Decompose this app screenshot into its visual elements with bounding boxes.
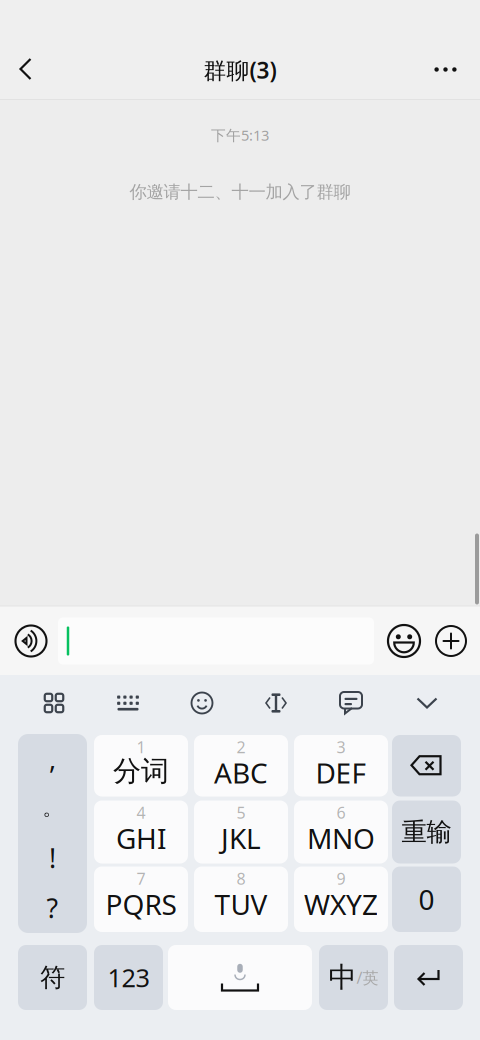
button[interactable]: 符 — [18, 945, 87, 1010]
button[interactable]: Move cursor — [249, 681, 303, 725]
button[interactable]: 7 — [94, 866, 188, 932]
staticText: 9 — [336, 868, 345, 889]
staticText: 下午5:13 — [211, 125, 269, 145]
button[interactable]: More actions — [429, 619, 473, 663]
staticText: ABC — [214, 754, 268, 791]
staticText: 1 — [136, 736, 145, 758]
button[interactable]: 9 — [294, 866, 388, 932]
staticText: , — [49, 741, 56, 776]
button[interactable]: 123 — [94, 945, 163, 1010]
staticText: DEF — [315, 754, 366, 791]
button[interactable]: 4 — [94, 800, 188, 863]
staticText: TUV — [214, 885, 267, 923]
staticText: 2 — [236, 736, 245, 758]
button[interactable] — [392, 735, 461, 796]
button[interactable]: 5 — [194, 800, 288, 863]
button[interactable]: 8 — [194, 866, 288, 932]
button[interactable]: Quick phrases — [324, 681, 378, 725]
button[interactable]: 1 — [94, 735, 188, 796]
staticText: ? — [46, 890, 58, 926]
staticText: 8 — [236, 868, 245, 889]
staticText: GHI — [116, 819, 166, 857]
button[interactable]: Hide keyboard — [400, 681, 454, 725]
staticText: 。 — [42, 796, 62, 820]
staticText: PQRS — [105, 885, 176, 923]
staticText: 123 — [107, 961, 149, 994]
staticText: 分词 — [113, 754, 169, 788]
staticText: 4 — [136, 802, 145, 823]
staticText: 6 — [336, 802, 345, 823]
staticText: 3 — [336, 736, 345, 758]
button[interactable]: Apps — [27, 681, 81, 725]
staticText: JKL — [221, 819, 261, 857]
button[interactable]: , — [18, 734, 87, 933]
staticText: 0 — [418, 881, 434, 918]
button[interactable] — [394, 945, 463, 1010]
button[interactable]: Keyboard — [101, 681, 155, 725]
staticText: ! — [49, 840, 56, 876]
staticText: 群聊(3) — [203, 55, 276, 85]
button[interactable]: 2 — [194, 735, 288, 796]
button[interactable]: 重输 — [392, 800, 461, 863]
staticText: 5 — [236, 802, 245, 823]
button[interactable]: Stickers — [175, 681, 229, 725]
staticText: WXYZ — [304, 885, 378, 923]
button[interactable] — [168, 945, 312, 1010]
staticText: 7 — [136, 868, 145, 889]
button[interactable]: 0 — [392, 866, 461, 932]
staticText: 你邀请十二、十一加入了群聊 — [129, 181, 350, 203]
staticText: /英 — [356, 967, 378, 988]
button[interactable]: 3 — [294, 735, 388, 796]
button[interactable]: 中 — [319, 945, 388, 1010]
button[interactable]: Back — [2, 46, 48, 92]
button[interactable]: Voice input — [9, 619, 53, 663]
button[interactable]: 6 — [294, 800, 388, 863]
button[interactable]: Emoji — [382, 619, 426, 663]
button[interactable]: More — [422, 46, 468, 92]
staticText: MNO — [307, 819, 375, 857]
staticText: 中 — [328, 960, 356, 995]
staticText: 重输 — [401, 816, 451, 847]
staticText: 符 — [40, 962, 65, 993]
